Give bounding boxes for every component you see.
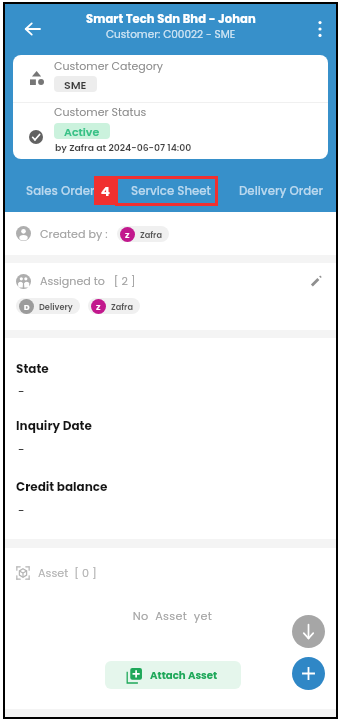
button[interactable]: Z xyxy=(117,226,169,242)
button[interactable]: Service Sheet xyxy=(116,170,226,212)
staticText: Zafra xyxy=(111,301,133,312)
staticText: Attach Asset xyxy=(150,668,218,682)
button[interactable]: D xyxy=(16,298,80,314)
staticText: Active xyxy=(64,124,100,139)
staticText: Inquiry Date xyxy=(16,417,92,434)
staticText: Service Sheet xyxy=(131,183,211,200)
button[interactable]: Sales Order xyxy=(5,170,116,212)
staticText: Sales Order xyxy=(26,183,95,200)
button[interactable]: Scroll down xyxy=(292,615,325,648)
staticText: Created by : xyxy=(40,226,108,242)
staticText: No Asset yet xyxy=(7,608,338,624)
staticText: - xyxy=(18,383,25,400)
staticText: 4 xyxy=(101,182,110,200)
staticText: Smart Tech Sdn Bhd - Johan xyxy=(86,11,256,27)
button[interactable]: Attach Asset xyxy=(105,661,241,689)
staticText: Customer Status xyxy=(54,104,147,119)
button[interactable]: Delivery Order xyxy=(226,170,336,212)
staticText: Delivery xyxy=(39,301,73,312)
staticText: D xyxy=(24,302,30,312)
button[interactable]: Back xyxy=(16,12,49,45)
button[interactable]: Z xyxy=(88,298,140,314)
staticText: Credit balance xyxy=(16,478,108,495)
staticText: Customer Category xyxy=(54,58,164,73)
staticText: Delivery Order xyxy=(239,183,323,200)
staticText: - xyxy=(18,441,25,458)
staticText: Z xyxy=(96,302,101,312)
button[interactable]: Add xyxy=(292,657,325,690)
staticText: State xyxy=(16,360,49,377)
staticText: SME xyxy=(64,77,87,92)
staticText: - xyxy=(18,502,25,519)
staticText: Assigned to [ 2 ] xyxy=(40,273,136,289)
button[interactable]: More options xyxy=(304,13,335,44)
staticText: by Zafra at 2024-06-07 14:00 xyxy=(55,141,192,154)
button[interactable]: Created by : xyxy=(5,212,336,255)
staticText: Z xyxy=(125,230,130,240)
staticText: Customer: C00022 - SME xyxy=(106,27,236,42)
staticText: Asset [ 0 ] xyxy=(38,565,97,581)
staticText: Zafra xyxy=(140,229,162,240)
button[interactable]: Edit xyxy=(305,271,325,291)
